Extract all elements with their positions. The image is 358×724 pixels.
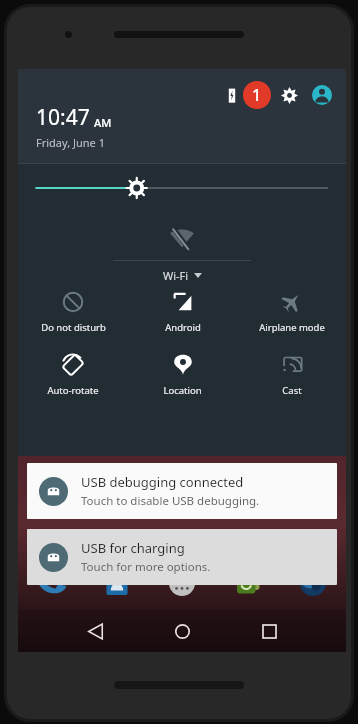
button[interactable]: Cast — [237, 350, 346, 401]
button[interactable]: Do not disturb — [18, 287, 128, 338]
staticText: USB debugging connected — [81, 473, 244, 491]
staticText: Do not disturb — [41, 321, 106, 334]
staticText: 1 — [252, 84, 262, 106]
staticText: Friday, June 1 — [36, 135, 105, 150]
button[interactable]: Location — [128, 350, 237, 401]
button[interactable]: Contacts — [100, 566, 134, 600]
staticText: USB for charging — [81, 539, 185, 557]
staticText: Touch for more options. — [81, 559, 211, 575]
button[interactable]: Android — [128, 287, 237, 338]
staticText: 10:47 — [36, 103, 90, 132]
button[interactable]: Recent apps — [252, 614, 286, 648]
button[interactable]: Settings — [277, 83, 301, 107]
button[interactable]: USB debugging connected — [27, 463, 337, 519]
button[interactable]: Back — [78, 614, 112, 648]
staticText: Location — [163, 384, 202, 397]
staticText: Touch to disable USB debugging. — [81, 493, 260, 509]
button[interactable]: Wi-Fi — [18, 212, 346, 283]
button[interactable]: Brightness — [18, 164, 346, 212]
staticText: Wi-Fi — [163, 268, 189, 283]
staticText: Auto-rotate — [47, 384, 99, 397]
button[interactable]: Browser — [296, 566, 330, 600]
staticText: Android — [165, 321, 201, 334]
button[interactable]: Auto-rotate — [18, 350, 128, 401]
staticText: Cast — [282, 384, 302, 397]
button[interactable]: Phone — [34, 566, 68, 600]
button[interactable]: 1 — [243, 81, 271, 109]
button[interactable]: Apps — [165, 566, 199, 600]
button[interactable]: Home — [165, 614, 199, 648]
button[interactable]: USB for charging — [27, 529, 337, 585]
button[interactable]: User — [310, 83, 334, 107]
staticText: AM — [94, 115, 112, 130]
staticText: Airplane mode — [259, 321, 325, 334]
button[interactable]: Airplane mode — [237, 287, 346, 338]
button[interactable]: Messaging — [231, 566, 265, 600]
